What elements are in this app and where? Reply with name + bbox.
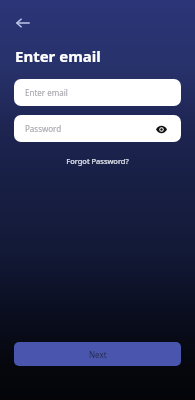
staticText: Forgot Password? [66, 156, 129, 166]
button[interactable]: Forgot Password? [60, 154, 135, 168]
button[interactable]: Show password [154, 122, 168, 136]
button[interactable]: Enter email [14, 79, 181, 106]
staticText: Next [89, 349, 107, 360]
button[interactable]: Next [14, 342, 181, 366]
staticText: Password [25, 123, 62, 134]
staticText: Enter email [15, 46, 101, 66]
staticText: Enter email [25, 87, 68, 98]
button[interactable]: Password [14, 115, 181, 142]
button[interactable]: Back [8, 8, 38, 38]
